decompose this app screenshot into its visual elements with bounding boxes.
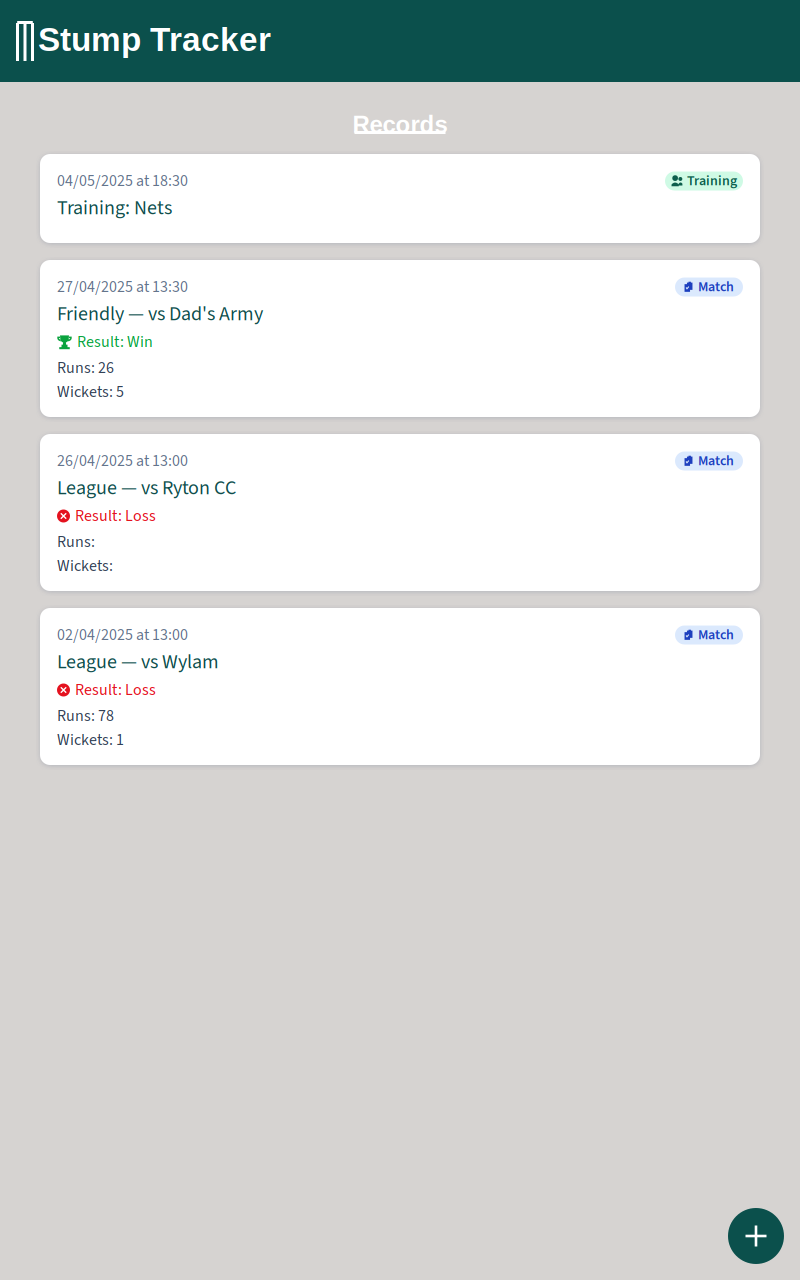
- staticText: Result: Loss: [75, 505, 156, 527]
- button[interactable]: 02/04/2025 at 13:00: [40, 608, 760, 765]
- button[interactable]: Add record: [728, 1208, 784, 1264]
- staticText: Runs: 26: [57, 357, 114, 379]
- staticText: 02/04/2025 at 13:00: [57, 624, 188, 646]
- staticText: Match: [698, 277, 734, 297]
- staticText: League — vs Ryton CC: [57, 474, 236, 502]
- staticText: Runs:: [57, 531, 98, 553]
- staticText: Records: [352, 111, 447, 138]
- staticText: Runs: 78: [57, 705, 114, 727]
- staticText: League — vs Wylam: [57, 648, 219, 676]
- staticText: Result: Loss: [75, 679, 156, 701]
- staticText: Training: [687, 171, 737, 191]
- staticText: Stump Tracker: [38, 21, 271, 58]
- staticText: Match: [698, 625, 734, 645]
- staticText: Training: Nets: [57, 194, 172, 222]
- staticText: 26/04/2025 at 13:00: [57, 450, 188, 472]
- staticText: Match: [698, 451, 734, 471]
- staticText: 04/05/2025 at 18:30: [57, 170, 188, 192]
- staticText: Result: Win: [77, 331, 153, 353]
- staticText: Friendly — vs Dad's Army: [57, 300, 263, 328]
- staticText: Wickets: 1: [57, 729, 124, 751]
- staticText: Wickets: 5: [57, 381, 124, 403]
- button[interactable]: 27/04/2025 at 13:30: [40, 260, 760, 417]
- staticText: Wickets:: [57, 555, 116, 577]
- staticText: 27/04/2025 at 13:30: [57, 276, 188, 298]
- button[interactable]: 04/05/2025 at 18:30: [40, 154, 760, 243]
- button[interactable]: 26/04/2025 at 13:00: [40, 434, 760, 591]
